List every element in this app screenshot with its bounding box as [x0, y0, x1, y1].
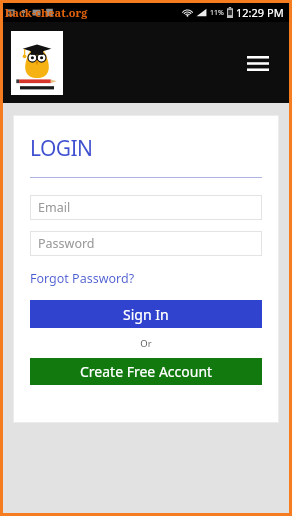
button[interactable]: Email — [30, 195, 262, 220]
button[interactable]: Create Free Account — [30, 358, 262, 385]
staticText: Create Free Account — [80, 362, 213, 381]
staticText: Email — [38, 199, 71, 216]
button[interactable]: SOPHOSI logo — [11, 31, 63, 95]
staticText: hack-cheat.org — [5, 5, 88, 20]
staticText: Password — [38, 235, 95, 252]
staticText: Or — [30, 337, 262, 350]
button[interactable]: Password — [30, 231, 262, 256]
button[interactable]: Forgot Password? — [30, 270, 135, 287]
staticText: 12:29 PM — [236, 5, 284, 20]
staticText: LOGIN — [30, 134, 93, 163]
staticText: Forgot Password? — [30, 270, 135, 287]
staticText: Sign In — [123, 305, 169, 324]
staticText: 11% — [210, 8, 224, 18]
button[interactable]: Sign In — [30, 300, 262, 328]
button[interactable]: Open navigation menu — [241, 46, 275, 80]
